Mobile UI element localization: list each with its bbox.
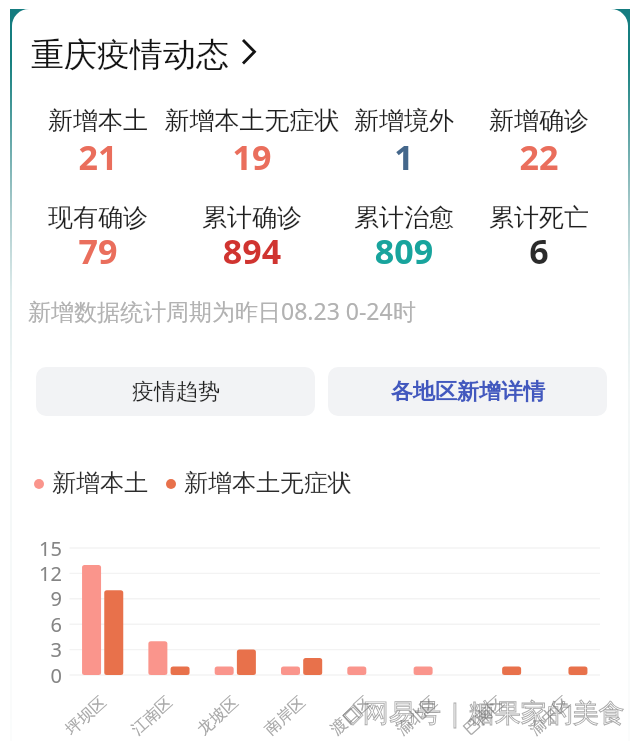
staticText: 现有确诊 [0,202,198,233]
staticText: 累计治愈 [304,202,504,233]
staticText: 巴南区 [459,692,509,739]
button[interactable]: 新增本土无症状 [152,105,352,180]
staticText: 894 [152,228,352,274]
staticText: 6 [439,228,639,274]
staticText: 809 [304,228,504,274]
staticText: 21 [0,134,198,180]
button[interactable]: 累计确诊 [152,202,352,274]
staticText: 坪坝区 [61,692,111,739]
staticText: 累计确诊 [152,202,352,233]
staticText: 新增本土无症状 [152,105,352,136]
staticText: 各地区新增详情 [391,378,545,406]
staticText: 19 [152,134,352,180]
staticText: 9 [50,585,62,612]
staticText: ◇网易号 | 糖果家的美食 [343,694,625,730]
staticText: 79 [0,228,198,274]
staticText: 12 [39,560,62,587]
button[interactable]: 各地区新增详情 [328,367,607,416]
button[interactable]: 疫情趋势 [36,367,315,416]
staticText: 6 [50,611,62,638]
staticText: 新增本土 [52,468,148,498]
button[interactable]: 新增本土 [0,105,198,180]
staticText: 渝中区 [525,692,575,739]
button[interactable]: 新增境外 [304,105,504,180]
staticText: 1 [304,134,504,180]
staticText: 渝北区 [392,692,442,739]
button[interactable]: 重庆疫情动态 [28,30,260,76]
staticText: 新增确诊 [439,105,639,136]
staticText: 22 [439,134,639,180]
staticText: 疫情趋势 [132,378,220,406]
button[interactable]: 累计治愈 [304,202,504,274]
staticText: 15 [39,535,62,562]
staticText: 江南区 [127,692,177,739]
button[interactable]: 新增确诊 [439,105,639,180]
staticText: 南岸区 [260,692,310,739]
staticText: 新增境外 [304,105,504,136]
staticText: 新增本土 [0,105,198,136]
staticText: 3 [50,636,62,663]
staticText: 重庆疫情动态 [31,34,229,76]
staticText: 龙坡区 [193,692,243,739]
staticText: 新增本土无症状 [184,468,352,498]
button[interactable]: 累计死亡 [439,202,639,274]
button[interactable]: 现有确诊 [0,202,198,274]
staticText: 0 [50,662,62,689]
staticText: 渡口区 [326,692,376,739]
staticText: 新增数据统计周期为昨日08.23 0-24时 [28,295,416,326]
staticText: 累计死亡 [439,202,639,233]
